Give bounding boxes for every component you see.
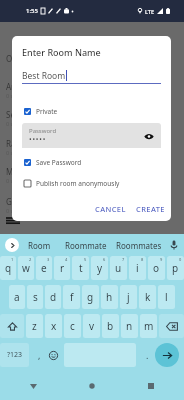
staticText: 0 users (6, 92, 25, 99)
button[interactable]: e (36, 256, 52, 280)
button[interactable]: a (9, 285, 25, 309)
staticText: 1:55 (26, 7, 38, 15)
staticText: x (51, 319, 57, 333)
staticText: CANCEL (95, 204, 126, 214)
button[interactable]: More suggestions (5, 238, 19, 252)
staticText: Gaming (6, 196, 36, 207)
button[interactable]: Roommate (62, 234, 110, 256)
button[interactable]: . (139, 343, 155, 367)
staticText: Random Chat (6, 138, 58, 149)
button[interactable]: Room (26, 234, 53, 256)
button[interactable]: r (54, 256, 70, 280)
staticText: j (127, 290, 130, 304)
staticText: v (89, 319, 95, 333)
button[interactable]: o (148, 256, 165, 280)
button[interactable]: k (139, 285, 156, 309)
button[interactable]: Emoji (45, 343, 61, 367)
staticText: b (107, 319, 114, 333)
button[interactable]: Enter (155, 343, 179, 367)
button[interactable]: b (102, 314, 119, 338)
staticText: l (165, 290, 168, 304)
button[interactable]: c (64, 314, 81, 338)
button[interactable]: u (110, 256, 127, 280)
button[interactable]: Recents (142, 377, 160, 395)
staticText: Antarctica (6, 81, 44, 92)
staticText: LTE (145, 8, 154, 15)
staticText: p (172, 261, 179, 275)
button[interactable]: Save Password (12, 157, 171, 168)
staticText: ••••• (29, 135, 47, 145)
button[interactable]: Private (12, 106, 171, 117)
staticText: 0 users (6, 207, 25, 214)
staticText: m (144, 319, 154, 333)
button[interactable]: d (45, 285, 61, 309)
staticText: Roommate (65, 240, 107, 251)
staticText: u (115, 261, 122, 275)
button[interactable]: Roommates (113, 234, 165, 256)
button[interactable]: t (72, 256, 89, 280)
staticText: 8 (141, 257, 144, 262)
button[interactable]: m (140, 314, 157, 338)
button[interactable]: Publish room anonymously (12, 178, 171, 189)
button[interactable]: q (0, 256, 16, 280)
staticText: CREATE (136, 204, 165, 214)
staticText: 1 (11, 257, 14, 262)
button[interactable]: Back (24, 377, 42, 395)
staticText: 2 (29, 257, 32, 262)
button[interactable]: Voice input (167, 234, 181, 256)
staticText: i (136, 261, 139, 275)
staticText: 7 (122, 257, 125, 262)
button[interactable]: , (31, 343, 47, 367)
staticText: My Room (6, 166, 42, 177)
staticText: d (50, 290, 57, 304)
staticText: n (126, 319, 133, 333)
button[interactable]: l (158, 285, 175, 309)
button[interactable]: g (82, 285, 99, 309)
button[interactable]: v (83, 314, 100, 338)
staticText: ?123 (7, 350, 23, 360)
button[interactable]: CANCEL (92, 201, 129, 217)
staticText: Open Room (6, 53, 51, 64)
staticText: 4 (65, 257, 68, 262)
button[interactable]: w (18, 256, 34, 280)
staticText: 0 (179, 257, 182, 262)
staticText: z (32, 319, 37, 333)
staticText: 9 (160, 257, 163, 262)
staticText: a (14, 290, 20, 304)
button[interactable]: y (91, 256, 108, 280)
staticText: 5 (84, 257, 87, 262)
button[interactable]: s (27, 285, 43, 309)
staticText: c (70, 319, 75, 333)
button[interactable]: Home (83, 377, 101, 395)
staticText: 0 users (6, 149, 25, 156)
button[interactable]: j (120, 285, 137, 309)
staticText: f (70, 290, 74, 304)
staticText: w (22, 261, 30, 275)
button[interactable]: p (167, 256, 184, 280)
button[interactable]: Shift (0, 314, 24, 338)
staticText: . (146, 349, 149, 361)
staticText: o (153, 261, 160, 275)
staticText: 0 users (6, 120, 25, 127)
button[interactable]: z (26, 314, 43, 338)
staticText: Publish room anonymously (36, 179, 120, 188)
staticText: s (33, 290, 38, 304)
button[interactable]: x (45, 314, 62, 338)
button[interactable]: h (101, 285, 118, 309)
button[interactable]: CREATE (133, 201, 168, 217)
button[interactable]: n (121, 314, 138, 338)
button[interactable]: Show password (142, 129, 156, 143)
staticText: , (38, 349, 41, 361)
button[interactable]: ?123 (0, 343, 29, 367)
button[interactable]: i (129, 256, 146, 280)
staticText: Enter Room Name (22, 46, 101, 58)
button[interactable]: Backspace (159, 314, 184, 338)
staticText: y (97, 261, 103, 275)
staticText: g (87, 290, 94, 304)
button[interactable]: f (63, 285, 80, 309)
staticText: t (79, 261, 83, 275)
staticText: Private (36, 107, 58, 116)
staticText: r (60, 261, 65, 275)
staticText: Sea Room (6, 109, 44, 120)
